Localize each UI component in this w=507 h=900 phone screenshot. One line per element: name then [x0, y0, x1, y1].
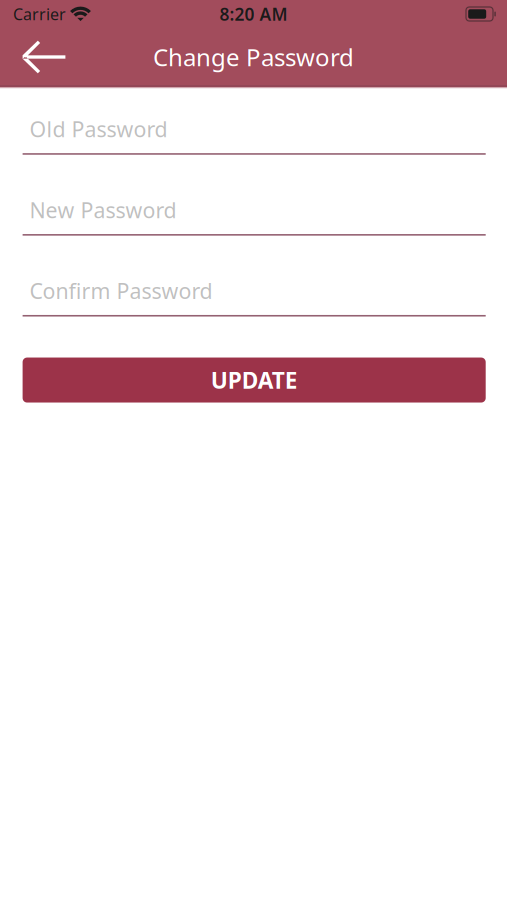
- staticText: Change Password: [153, 41, 354, 73]
- staticText: Carrier: [13, 3, 66, 25]
- staticText: Old Password: [30, 115, 168, 143]
- button[interactable]: Back: [0, 28, 80, 85]
- staticText: Confirm Password: [30, 277, 213, 305]
- staticText: New Password: [30, 196, 177, 224]
- staticText: UPDATE: [211, 365, 298, 395]
- staticText: 8:20 AM: [219, 2, 287, 25]
- button[interactable]: UPDATE: [23, 358, 486, 403]
